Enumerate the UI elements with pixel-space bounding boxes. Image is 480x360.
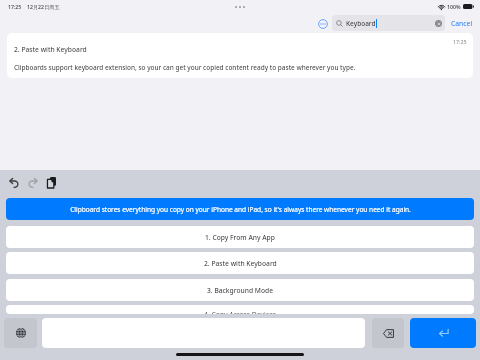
button[interactable]: Clear text xyxy=(435,20,442,27)
button[interactable]: Clipboard stores everything you copy on … xyxy=(6,198,474,220)
button[interactable]: More options xyxy=(317,18,328,29)
staticText: 100% xyxy=(447,3,461,10)
staticText: 17:25 xyxy=(8,3,22,10)
staticText: 12月22日周五 xyxy=(27,3,60,10)
button[interactable]: Cancel xyxy=(451,19,473,28)
staticText: Keyboard xyxy=(346,19,376,28)
button[interactable]: Redo xyxy=(25,175,40,190)
button[interactable]: 2. Paste with Keyboard xyxy=(6,252,474,274)
button[interactable]: Paste xyxy=(44,175,59,190)
staticText: 2. Paste with Keyboard xyxy=(204,259,277,268)
staticText: Clipboards support keyboard extension, s… xyxy=(14,63,356,72)
staticText: 17:25 xyxy=(453,38,467,45)
button[interactable]: 4. Copy Across Devices xyxy=(6,305,474,314)
button[interactable]: 3. Background Mode xyxy=(6,279,474,301)
button[interactable]: Next keyboard xyxy=(4,318,37,348)
button[interactable]: Undo xyxy=(6,175,21,190)
staticText: 4. Copy Across Devices xyxy=(204,310,277,314)
staticText: 1. Copy From Any App xyxy=(205,233,275,242)
button[interactable]: Return xyxy=(410,318,476,348)
staticText: 2. Paste with Keyboard xyxy=(14,45,87,54)
button[interactable]: Backspace xyxy=(372,318,404,348)
staticText: Cancel xyxy=(451,19,473,28)
staticText: 3. Background Mode xyxy=(207,286,274,295)
staticText: Clipboard stores everything you copy on … xyxy=(70,205,411,214)
button[interactable]: Keyboard xyxy=(332,15,445,31)
button[interactable]: 1. Copy From Any App xyxy=(6,226,474,248)
